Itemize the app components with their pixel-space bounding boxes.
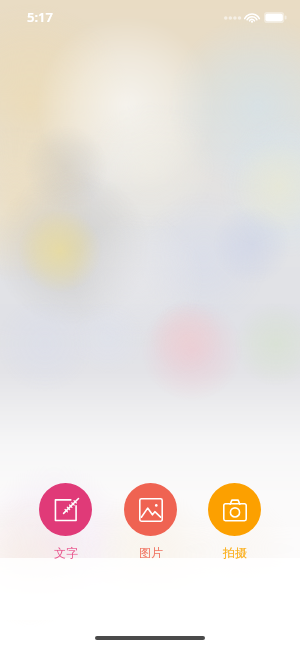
button[interactable]: 拍摄 [202, 481, 267, 562]
button[interactable]: 图片 [118, 481, 183, 562]
staticText: 图片 [139, 545, 163, 560]
button[interactable]: 文字 [33, 481, 98, 562]
staticText: 文字 [54, 545, 78, 560]
staticText: 拍摄 [223, 545, 247, 560]
staticText: 5:17 [27, 8, 53, 26]
